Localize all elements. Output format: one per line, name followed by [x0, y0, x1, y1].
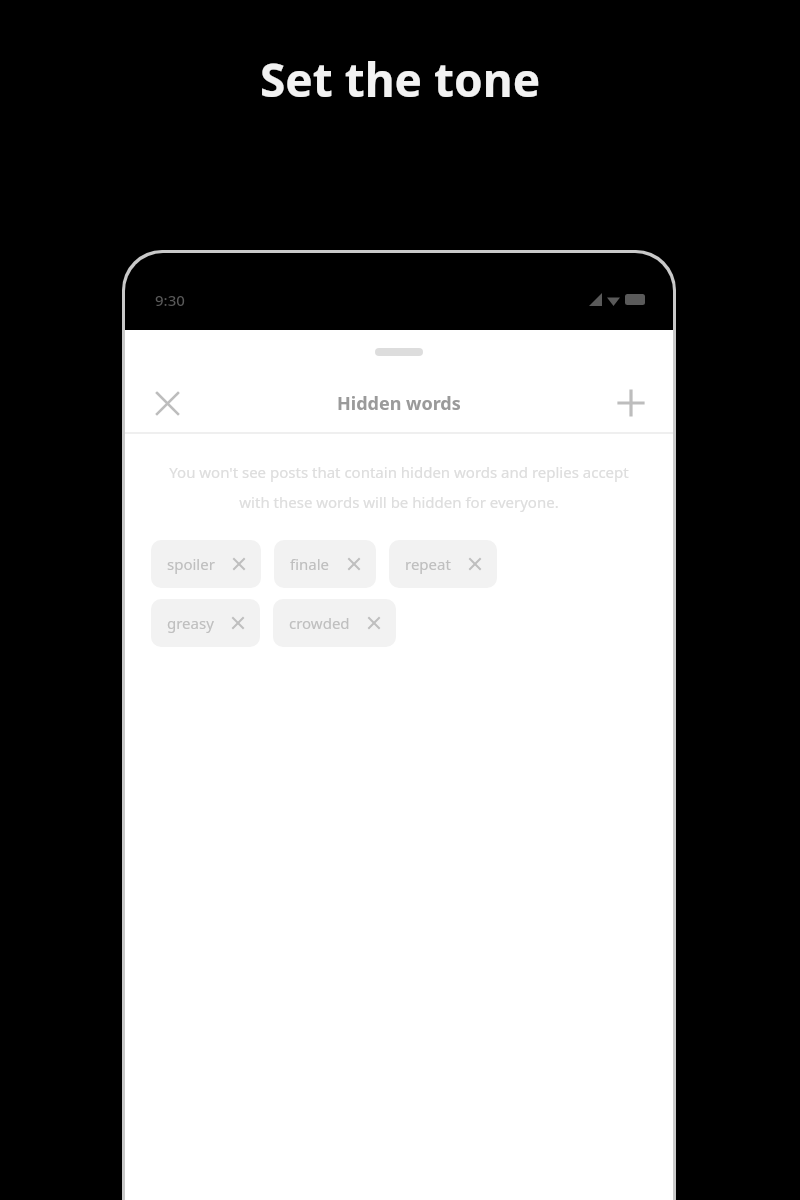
staticText: 9:30	[155, 290, 185, 310]
other: Remove crowded	[364, 613, 384, 633]
staticText: greasy	[167, 613, 214, 633]
staticText: repeat	[405, 554, 451, 574]
other: Remove finale	[344, 554, 364, 574]
button[interactable]: crowded	[273, 599, 396, 647]
button[interactable]: finale	[274, 540, 376, 588]
staticText: Set the tone	[260, 48, 541, 111]
button[interactable]: Close	[143, 379, 191, 427]
other: Remove repeat	[465, 554, 485, 574]
staticText: You won't see posts that contain hidden …	[165, 462, 633, 512]
button[interactable]: Add word	[607, 379, 655, 427]
staticText: crowded	[289, 613, 350, 633]
button[interactable]: repeat	[389, 540, 497, 588]
button[interactable]: spoiler	[151, 540, 261, 588]
other: Remove spoiler	[229, 554, 249, 574]
staticText: spoiler	[167, 554, 215, 574]
other: Remove greasy	[228, 613, 248, 633]
staticText: Hidden words	[337, 391, 461, 416]
button[interactable]: greasy	[151, 599, 260, 647]
staticText: finale	[290, 554, 330, 574]
